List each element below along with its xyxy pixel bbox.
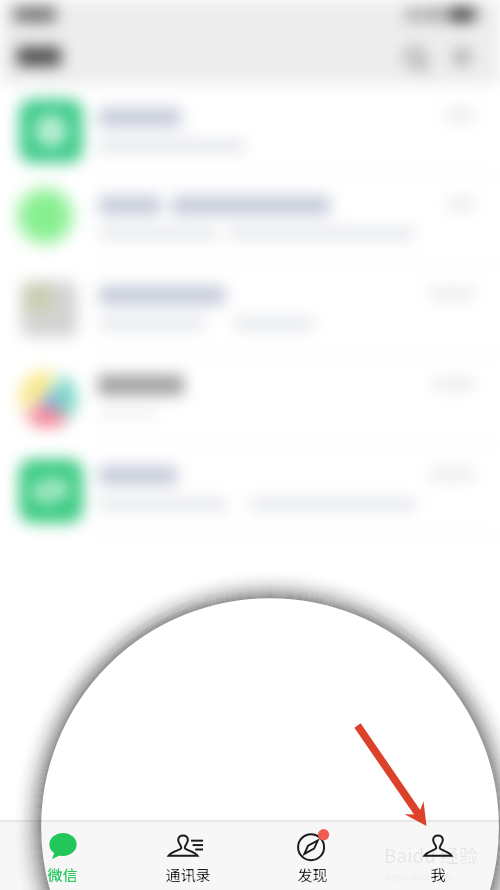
button[interactable]: 发现 xyxy=(250,822,375,890)
button[interactable]: 通讯录 xyxy=(125,822,250,890)
staticText: jingyan.baidu.com xyxy=(384,871,454,883)
staticText: 通讯录 xyxy=(165,864,211,886)
staticText: Baidu 经验 xyxy=(384,841,478,869)
staticText: 我 xyxy=(430,864,446,886)
staticText: 微信 xyxy=(47,864,78,886)
button[interactable]: 我 xyxy=(375,822,500,890)
button[interactable]: 微信 xyxy=(0,822,125,890)
staticText: 发现 xyxy=(297,864,328,886)
